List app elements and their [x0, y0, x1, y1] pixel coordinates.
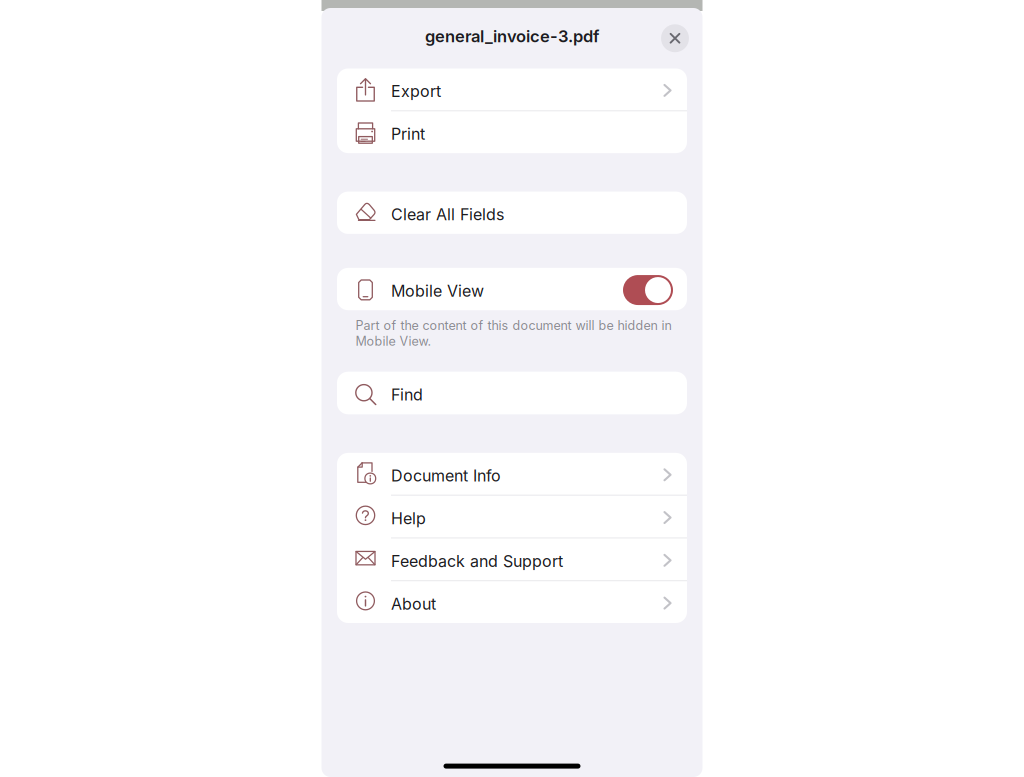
- staticText: Print: [391, 124, 425, 144]
- staticText: Find: [391, 385, 423, 404]
- staticText: Part of the content of this document wil…: [355, 318, 671, 349]
- staticText: Feedback and Support: [391, 551, 563, 571]
- button[interactable]: Find: [337, 372, 687, 414]
- button[interactable]: Document Info: [337, 453, 687, 495]
- button[interactable]: About: [337, 581, 687, 623]
- staticText: Export: [391, 81, 441, 101]
- button[interactable]: Feedback and Support: [337, 538, 687, 580]
- staticText: general_invoice-3.pdf: [425, 26, 599, 46]
- staticText: Help: [391, 509, 426, 528]
- staticText: About: [391, 594, 436, 614]
- button[interactable]: Close: [661, 24, 689, 52]
- button[interactable]: Print: [337, 111, 687, 153]
- button[interactable]: Mobile View, on: [623, 275, 673, 305]
- staticText: Document Info: [391, 466, 501, 485]
- button[interactable]: Export: [337, 68, 687, 110]
- staticText: Mobile View: [391, 281, 484, 301]
- staticText: Clear All Fields: [391, 205, 504, 224]
- button[interactable]: Help: [337, 496, 687, 537]
- button[interactable]: Mobile View: [337, 268, 687, 310]
- button[interactable]: Clear All Fields: [337, 192, 687, 234]
